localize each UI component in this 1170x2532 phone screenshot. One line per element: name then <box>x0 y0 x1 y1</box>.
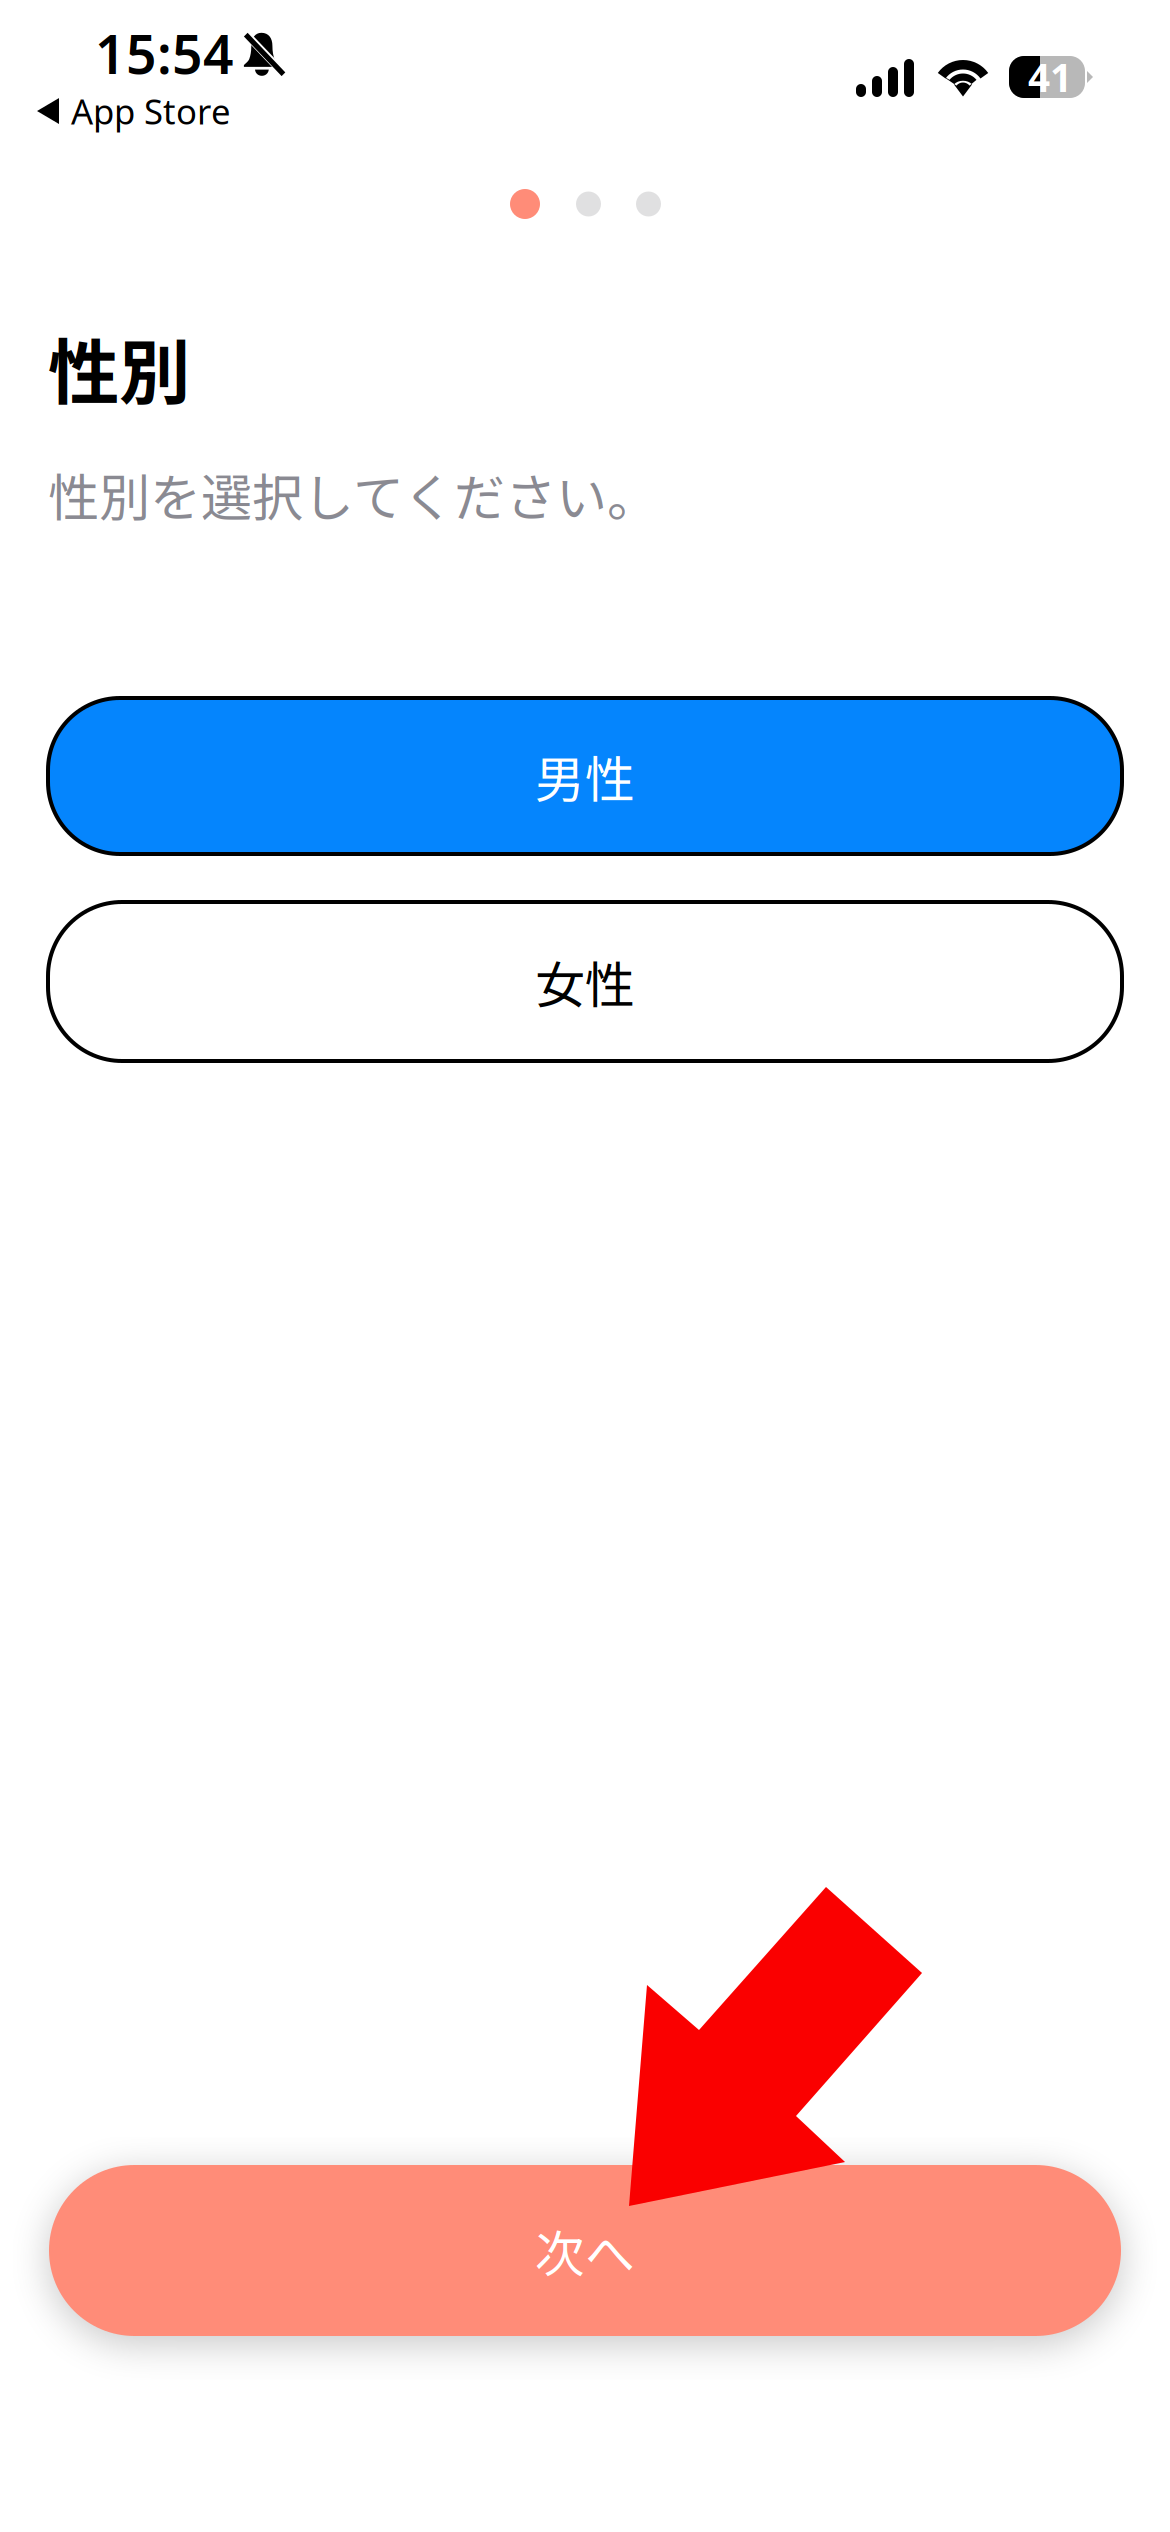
button[interactable]: 次へ <box>49 2165 1121 2336</box>
staticText: 41 <box>1028 51 1072 103</box>
button[interactable]: 女性 <box>48 902 1122 1061</box>
staticText: 女性 <box>535 945 635 1018</box>
button[interactable]: 男性 <box>48 698 1122 854</box>
staticText: 15:54 <box>95 18 234 89</box>
staticText: 次へ <box>535 2214 635 2287</box>
staticText: 性別を選択してください。 <box>48 457 658 531</box>
button[interactable]: App Store <box>31 84 237 138</box>
staticText: App Store <box>71 88 231 134</box>
staticText: 男性 <box>535 740 635 812</box>
staticText: 性別 <box>48 316 190 419</box>
